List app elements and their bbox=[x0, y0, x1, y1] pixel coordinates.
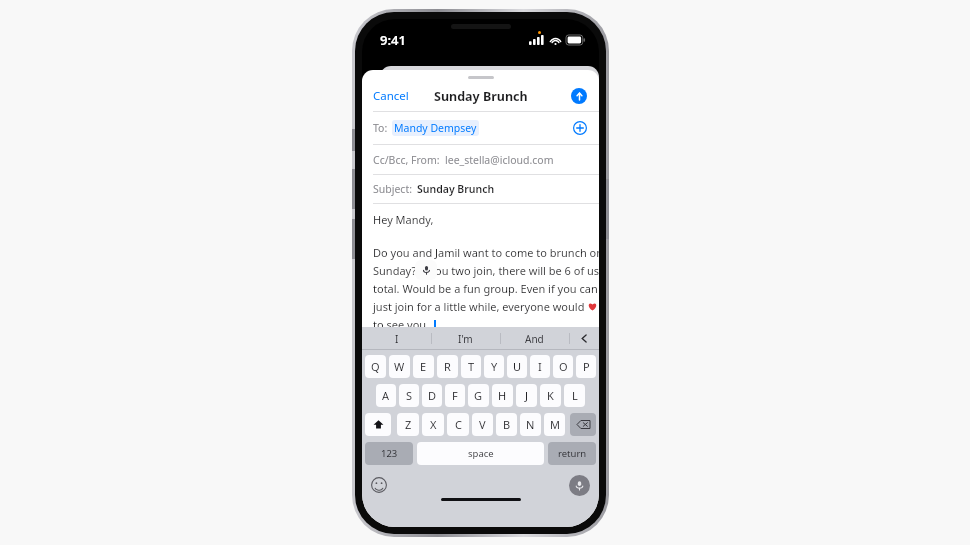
button[interactable]: Add contact bbox=[573, 121, 587, 135]
staticText: R bbox=[444, 359, 451, 374]
staticText: Sunday Brunch bbox=[434, 88, 528, 105]
staticText: G bbox=[474, 388, 483, 403]
staticText: To: bbox=[373, 121, 388, 135]
button[interactable]: Previous bbox=[569, 327, 599, 350]
staticText: space bbox=[468, 447, 494, 460]
staticText: L bbox=[572, 388, 578, 403]
staticText: lee_stella@icloud.com bbox=[445, 153, 554, 167]
staticText: X bbox=[430, 417, 437, 432]
staticText: N bbox=[526, 417, 535, 432]
button[interactable]: L bbox=[564, 384, 585, 407]
staticText: K bbox=[547, 388, 554, 403]
staticText: total. Would be a fun group. Even if you… bbox=[373, 281, 598, 296]
staticText: 123 bbox=[381, 447, 398, 460]
button[interactable]: I'm bbox=[431, 327, 500, 350]
staticText: O bbox=[559, 359, 568, 374]
staticText: A bbox=[382, 388, 390, 403]
staticText: T bbox=[468, 359, 475, 374]
staticText: U bbox=[513, 359, 522, 374]
staticText: Q bbox=[371, 359, 380, 374]
staticText: I'm bbox=[458, 332, 473, 346]
staticText: S bbox=[406, 388, 413, 403]
staticText: Cancel bbox=[373, 88, 409, 104]
staticText: M bbox=[550, 417, 560, 432]
button[interactable]: D bbox=[422, 384, 442, 407]
button[interactable]: G bbox=[468, 384, 489, 407]
button[interactable]: A bbox=[376, 384, 396, 407]
button[interactable]: Y bbox=[484, 355, 504, 378]
staticText: return bbox=[558, 447, 587, 460]
button[interactable]: Cc/Bcc, From: bbox=[362, 145, 599, 174]
staticText: I bbox=[538, 359, 542, 374]
button[interactable]: Emoji bbox=[371, 477, 387, 493]
staticText: Subject: bbox=[373, 182, 412, 196]
button[interactable]: J bbox=[516, 384, 537, 407]
staticText: to see you. bbox=[373, 317, 430, 332]
staticText: just join for a little while, everyone w… bbox=[373, 299, 588, 314]
button[interactable]: B bbox=[496, 413, 517, 436]
button[interactable]: Shift bbox=[365, 413, 391, 436]
staticText: E bbox=[420, 359, 427, 374]
button[interactable]: T bbox=[461, 355, 481, 378]
button[interactable]: 123 bbox=[365, 442, 413, 465]
button[interactable]: P bbox=[576, 355, 596, 378]
button[interactable]: E bbox=[413, 355, 434, 378]
staticText: F bbox=[452, 388, 458, 403]
staticText: P bbox=[583, 359, 590, 374]
button[interactable]: W bbox=[389, 355, 410, 378]
staticText: D bbox=[428, 388, 437, 403]
button[interactable]: M bbox=[544, 413, 565, 436]
staticText: W bbox=[394, 359, 405, 374]
staticText: Do you and Jamil want to come to brunch … bbox=[373, 245, 599, 260]
button[interactable]: V bbox=[472, 413, 493, 436]
staticText: V bbox=[479, 417, 486, 432]
staticText: Mandy Dempsey bbox=[394, 121, 477, 135]
staticText: Sunday? If you two join, there will be 6… bbox=[373, 263, 599, 278]
button[interactable]: space bbox=[417, 442, 544, 465]
button[interactable]: Dictate bbox=[569, 475, 590, 496]
button[interactable]: N bbox=[520, 413, 541, 436]
button[interactable]: F bbox=[445, 384, 465, 407]
staticText: Y bbox=[491, 359, 498, 374]
button[interactable]: And bbox=[500, 327, 569, 350]
staticText: Hey Mandy, bbox=[373, 212, 434, 227]
staticText: B bbox=[503, 417, 511, 432]
button[interactable]: Z bbox=[397, 413, 419, 436]
staticText: J bbox=[525, 388, 529, 403]
button[interactable]: Cancel bbox=[362, 84, 420, 108]
staticText: Z bbox=[405, 417, 412, 432]
staticText: Sunday Brunch bbox=[417, 182, 495, 196]
staticText: C bbox=[455, 417, 462, 432]
button[interactable]: R bbox=[437, 355, 458, 378]
button[interactable]: To: bbox=[362, 112, 599, 144]
button[interactable]: Q bbox=[365, 355, 386, 378]
staticText: 9:41 bbox=[380, 31, 406, 49]
staticText: I bbox=[395, 332, 399, 346]
button[interactable]: I bbox=[530, 355, 550, 378]
staticText: H bbox=[498, 388, 507, 403]
button[interactable]: C bbox=[447, 413, 469, 436]
button[interactable]: K bbox=[540, 384, 561, 407]
button[interactable]: I bbox=[362, 327, 431, 350]
button[interactable]: return bbox=[548, 442, 596, 465]
button[interactable]: U bbox=[507, 355, 527, 378]
button[interactable]: Backspace bbox=[570, 413, 596, 436]
staticText: Best, bbox=[373, 346, 399, 361]
button[interactable]: O bbox=[553, 355, 573, 378]
staticText: And bbox=[525, 332, 544, 346]
button[interactable]: H bbox=[492, 384, 513, 407]
staticText: Cc/Bcc, From: bbox=[373, 153, 440, 167]
button[interactable]: Subject: bbox=[362, 175, 599, 203]
button[interactable]: X bbox=[422, 413, 444, 436]
button[interactable]: S bbox=[399, 384, 419, 407]
button[interactable]: Send bbox=[571, 88, 587, 104]
